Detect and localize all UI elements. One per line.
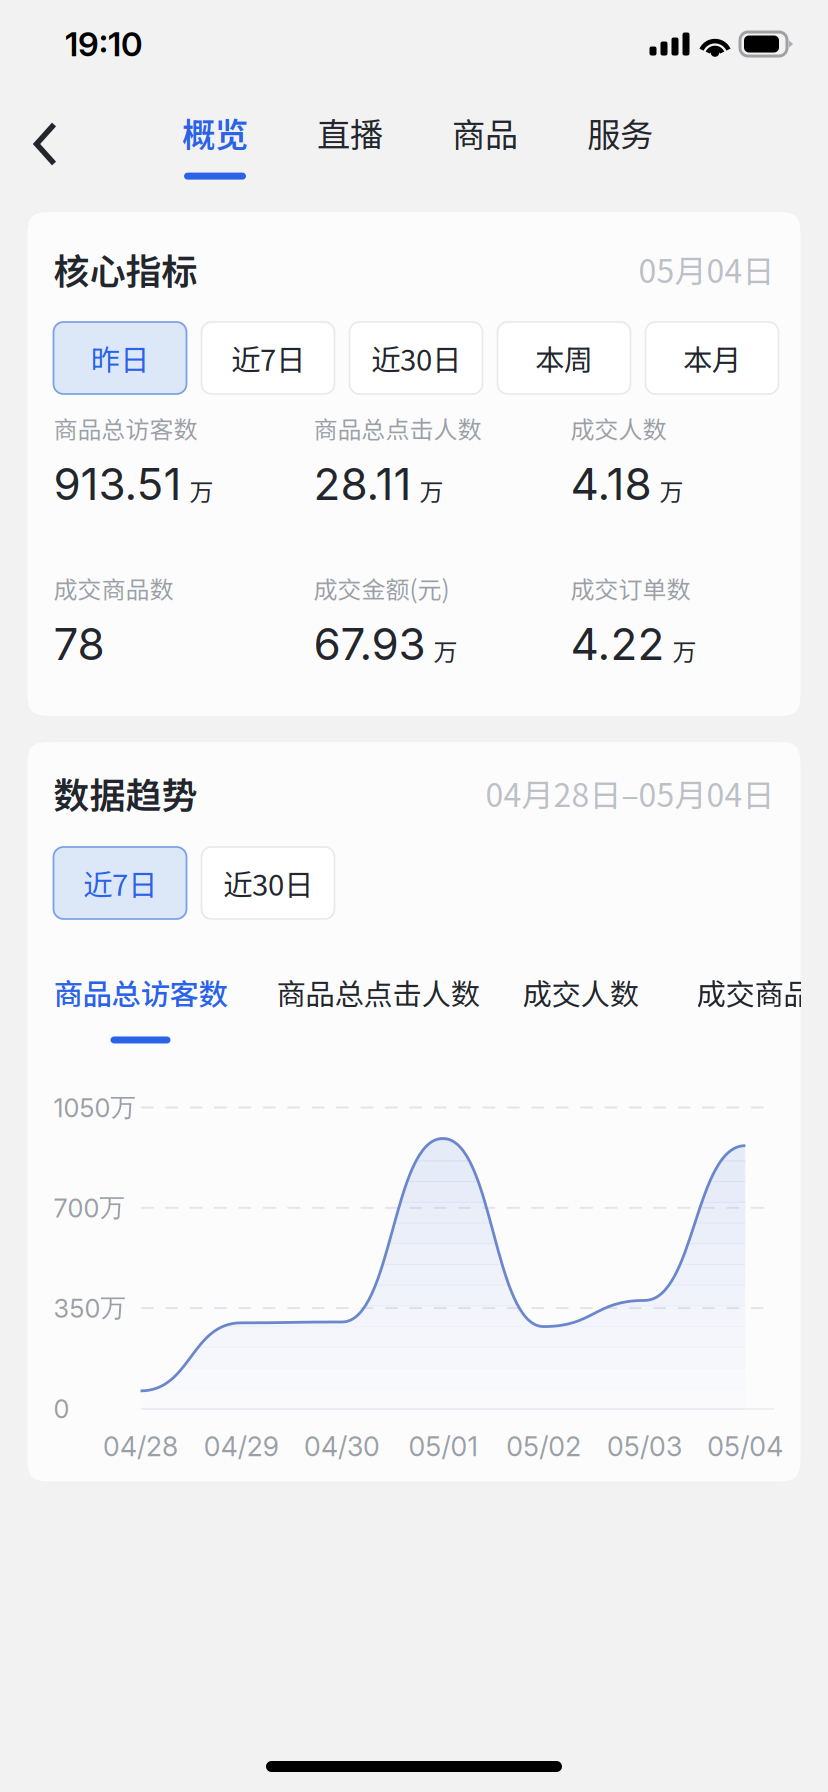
staticText: 万	[419, 473, 443, 508]
staticText: 05月04日	[638, 246, 774, 292]
staticText: 近30日	[371, 337, 461, 379]
staticText: 700万	[53, 1192, 124, 1224]
staticText: 成交商品数	[696, 971, 828, 1013]
staticText: 04/28	[103, 1430, 178, 1463]
button[interactable]: 商品总访客数	[53, 971, 227, 1043]
staticText: 913.51	[53, 457, 181, 511]
staticText: 28.11	[313, 457, 411, 511]
button[interactable]: 直播	[301, 98, 399, 190]
staticText: 商品总点击人数	[313, 411, 481, 445]
staticText: 近7日	[83, 862, 157, 904]
staticText: 成交人数	[570, 411, 666, 445]
staticText: 04月28日–05月04日	[485, 770, 774, 816]
staticText: 04/30	[304, 1430, 380, 1463]
staticText: 商品总点击人数	[276, 971, 479, 1013]
staticText: 1050万	[53, 1091, 135, 1123]
button[interactable]: 近30日	[349, 322, 482, 394]
staticText: 商品	[452, 108, 518, 157]
button[interactable]: 本月	[645, 322, 778, 394]
staticText: 近7日	[231, 337, 305, 379]
button[interactable]: 近30日	[201, 847, 334, 919]
staticText: 直播	[317, 108, 383, 157]
staticText: 服务	[587, 108, 653, 157]
staticText: 78	[53, 617, 104, 671]
staticText: 67.93	[313, 617, 425, 671]
staticText: 05/04	[707, 1430, 783, 1463]
button[interactable]: 近7日	[53, 847, 186, 919]
button[interactable]: 商品总点击人数	[276, 971, 479, 1043]
button[interactable]: 成交商品数	[696, 971, 828, 1043]
staticText: 核心指标	[53, 243, 197, 295]
staticText: 万	[672, 633, 696, 668]
button[interactable]: 近7日	[201, 322, 334, 394]
button[interactable]: Back	[0, 101, 82, 186]
button[interactable]: 概览	[166, 98, 264, 190]
staticText: 04/29	[204, 1430, 279, 1463]
staticText: 350万	[53, 1292, 125, 1324]
staticText: 商品总访客数	[53, 411, 197, 445]
staticText: 近30日	[223, 862, 313, 904]
staticText: 成交人数	[522, 971, 638, 1013]
staticText: 本周	[535, 337, 593, 379]
button[interactable]: 商品	[436, 98, 534, 190]
staticText: 05/03	[607, 1430, 682, 1463]
staticText: 商品总访客数	[53, 971, 227, 1013]
staticText: 万	[189, 473, 213, 508]
staticText: 成交订单数	[570, 571, 690, 605]
staticText: 概览	[182, 108, 248, 157]
button[interactable]: 成交人数	[522, 971, 638, 1043]
staticText: 本月	[683, 337, 741, 379]
staticText: 4.22	[570, 617, 664, 671]
staticText: 05/02	[506, 1430, 581, 1463]
button[interactable]: 昨日	[53, 322, 186, 394]
staticText: 万	[659, 473, 683, 508]
staticText: 数据趋势	[53, 767, 197, 819]
staticText: 19:10	[65, 24, 143, 64]
staticText: 成交金额(元)	[313, 571, 449, 605]
staticText: 成交商品数	[53, 571, 173, 605]
staticText: 昨日	[91, 337, 149, 379]
staticText: 05/01	[408, 1430, 477, 1463]
button[interactable]: 本周	[497, 322, 630, 394]
staticText: 4.18	[570, 457, 651, 511]
staticText: 万	[433, 633, 457, 668]
staticText: 0	[53, 1394, 69, 1424]
button[interactable]: 服务	[571, 98, 669, 190]
